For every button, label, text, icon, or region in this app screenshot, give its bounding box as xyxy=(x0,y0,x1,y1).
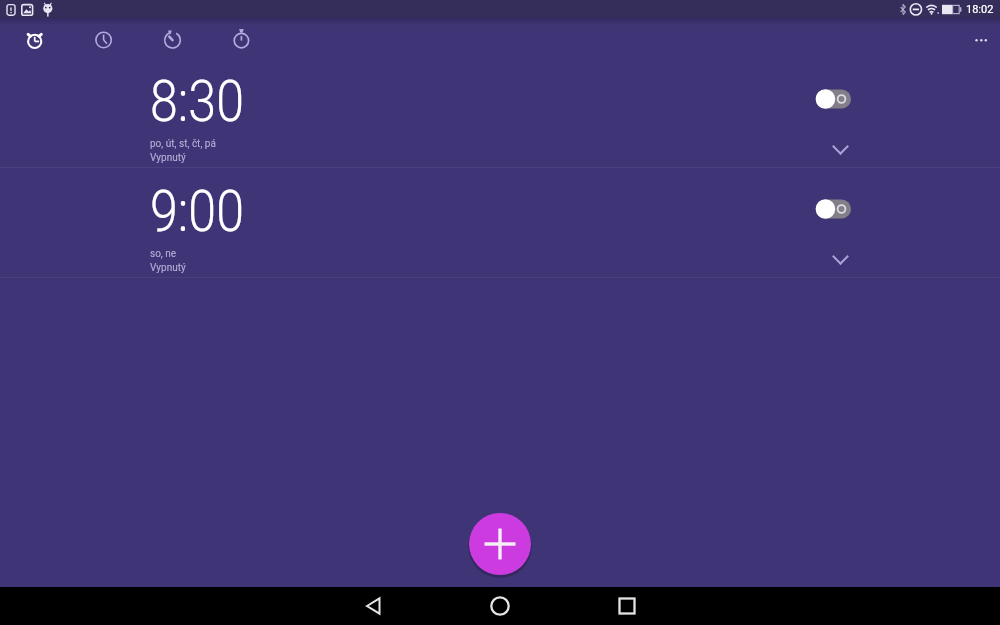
staticText: 8:30 xyxy=(150,68,244,135)
staticText: 9:00 xyxy=(150,178,244,245)
button[interactable] xyxy=(808,82,859,116)
button[interactable] xyxy=(824,136,857,164)
button[interactable]: 9:00 xyxy=(0,168,1000,278)
button[interactable] xyxy=(467,511,533,577)
button[interactable] xyxy=(824,246,857,274)
button[interactable] xyxy=(966,26,996,55)
staticText: Vypnutý xyxy=(150,262,186,274)
button[interactable] xyxy=(218,21,265,60)
staticText: 18:02 xyxy=(966,3,994,16)
staticText: po, út, st, čt, pá xyxy=(150,138,216,150)
button[interactable] xyxy=(149,21,196,60)
button[interactable] xyxy=(352,587,396,625)
button[interactable] xyxy=(478,587,522,625)
button[interactable]: 8:30 xyxy=(0,58,1000,168)
button[interactable] xyxy=(80,21,127,60)
button[interactable] xyxy=(605,587,649,625)
staticText: Vypnutý xyxy=(150,152,186,164)
button[interactable] xyxy=(11,21,58,60)
button[interactable] xyxy=(808,192,859,226)
staticText: so, ne xyxy=(150,248,177,260)
